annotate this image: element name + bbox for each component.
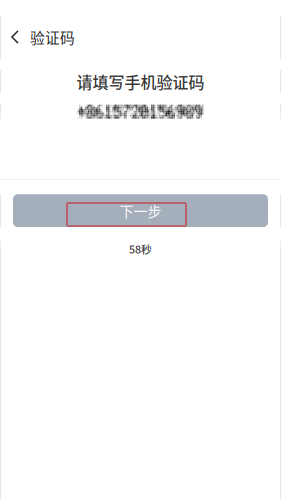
- staticText: 下一步: [119, 200, 161, 221]
- button[interactable]: Back: [0, 15, 30, 59]
- staticText: 验证码: [30, 26, 75, 48]
- staticText: 请填写手机验证码: [76, 70, 204, 93]
- button[interactable]: 下一步: [13, 194, 268, 227]
- staticText: 58秒: [129, 241, 152, 257]
- button[interactable]: 验证码: [30, 15, 75, 59]
